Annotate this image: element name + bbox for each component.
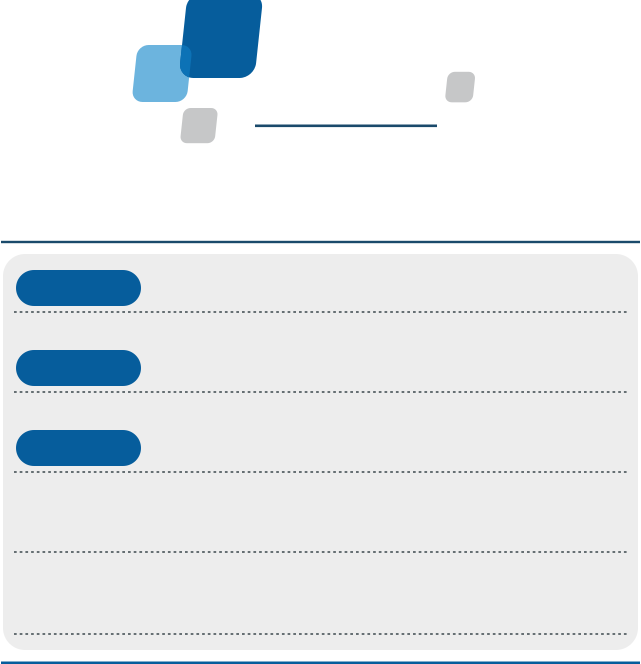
button[interactable]: Row 1: [0, 0, 641, 664]
button[interactable]: Row 2: [0, 0, 641, 664]
button[interactable]: Row 3: [0, 0, 641, 664]
